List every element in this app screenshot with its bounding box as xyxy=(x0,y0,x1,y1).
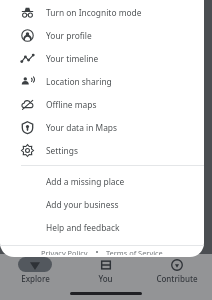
button[interactable]: Help and feedback xyxy=(0,216,204,239)
button[interactable]: Turn on Incognito mode xyxy=(0,1,204,24)
staticText: Contribute xyxy=(156,273,198,284)
staticText: Location sharing xyxy=(46,76,112,87)
staticText: Turn on Incognito mode xyxy=(46,7,142,18)
button[interactable]: Explore xyxy=(0,254,70,284)
button[interactable]: Terms of Service xyxy=(104,246,165,257)
button[interactable]: Settings xyxy=(0,139,204,162)
staticText: Add your business xyxy=(46,199,119,210)
button[interactable]: Offline maps xyxy=(0,93,204,116)
button[interactable]: Your profile xyxy=(0,24,204,47)
button[interactable]: Add your business xyxy=(0,193,204,216)
staticText: Terms of Service xyxy=(106,248,163,255)
staticText: Your data in Maps xyxy=(46,122,118,133)
button[interactable]: Add a missing place xyxy=(0,170,204,193)
staticText: You xyxy=(98,273,113,284)
button[interactable]: Your data in Maps xyxy=(0,116,204,139)
button[interactable]: Your timeline xyxy=(0,47,204,70)
staticText: Offline maps xyxy=(46,99,97,110)
button[interactable]: Location sharing xyxy=(0,70,204,93)
staticText: Explore xyxy=(21,273,50,284)
button[interactable]: Privacy Policy xyxy=(39,246,90,257)
staticText: Add a missing place xyxy=(46,176,125,187)
button[interactable]: You xyxy=(70,254,141,284)
staticText: Your timeline xyxy=(46,53,99,64)
button[interactable]: Contribute xyxy=(141,254,212,284)
staticText: Settings xyxy=(46,145,78,156)
staticText: Your profile xyxy=(46,30,92,41)
staticText: Help and feedback xyxy=(46,222,120,233)
staticText: Privacy Policy xyxy=(41,248,88,255)
